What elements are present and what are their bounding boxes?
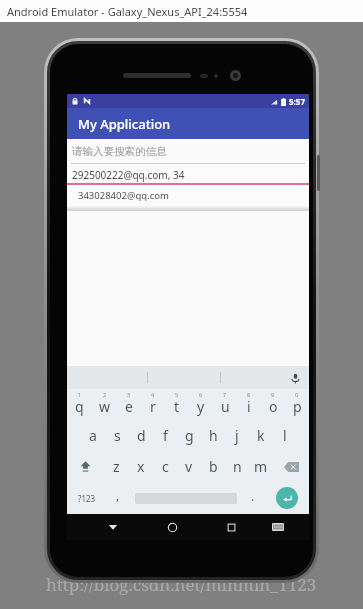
button[interactable]: Home [154, 514, 191, 540]
staticText: t [174, 397, 180, 416]
staticText: f [163, 426, 168, 445]
staticText: i [247, 397, 251, 416]
staticText: k [257, 426, 265, 445]
button[interactable]: 7 [213, 389, 237, 420]
staticText: 2 [103, 391, 107, 398]
staticText: My Application [78, 115, 171, 133]
staticText: w [99, 397, 111, 416]
button[interactable]: k [249, 420, 273, 451]
button[interactable]: h [201, 420, 225, 451]
staticText: u [221, 397, 230, 416]
button[interactable]: l [273, 420, 297, 451]
staticText: h [209, 426, 218, 445]
button[interactable]: Voice input [288, 371, 302, 385]
button[interactable]: x [129, 451, 153, 482]
button[interactable]: Space [130, 482, 241, 514]
button[interactable]: Recents [213, 514, 250, 540]
staticText: o [269, 397, 278, 416]
staticText: n [233, 457, 242, 476]
staticText: 7 [223, 391, 227, 398]
staticText: z [113, 457, 120, 476]
button[interactable]: a [80, 420, 105, 451]
button[interactable]: b [201, 451, 225, 482]
button[interactable]: f [153, 420, 177, 451]
button[interactable]: 292500222@qq.com, 34 [67, 164, 309, 185]
staticText: 5 [175, 391, 179, 398]
staticText: v [185, 457, 193, 476]
staticText: 5:57 [289, 96, 305, 107]
button[interactable]: 0 [285, 389, 309, 420]
staticText: 9 [271, 391, 275, 398]
staticText: 请输入要搜索的信息 [72, 145, 167, 158]
staticText: Android Emulator - Galaxy_Nexus_API_24:5… [7, 4, 248, 19]
button[interactable]: Backspace [273, 451, 309, 482]
staticText: p [293, 397, 302, 416]
staticText: 1 [78, 391, 82, 398]
staticText: a [89, 426, 97, 445]
staticText: b [209, 457, 218, 476]
button[interactable]: ?123 [67, 482, 106, 514]
button[interactable]: Back [94, 514, 132, 540]
button[interactable]: z [104, 451, 129, 482]
staticText: d [137, 426, 146, 445]
button[interactable]: n [225, 451, 249, 482]
button[interactable]: m [249, 451, 273, 482]
staticText: q [75, 397, 84, 416]
staticText: l [283, 426, 287, 445]
button[interactable]: 9 [261, 389, 285, 420]
staticText: x [137, 457, 145, 476]
button[interactable]: Shift [67, 451, 104, 482]
button[interactable]: 3 [117, 389, 141, 420]
button[interactable]: Enter [265, 482, 309, 514]
button[interactable]: c [153, 451, 177, 482]
button[interactable]: j [225, 420, 249, 451]
button[interactable]: g [177, 420, 201, 451]
button[interactable]: 2 [92, 389, 117, 420]
staticText: m [254, 457, 268, 476]
staticText: c [162, 457, 169, 476]
button[interactable]: 请输入要搜索的信息 [67, 139, 309, 164]
button[interactable]: 8 [237, 389, 261, 420]
staticText: , [116, 487, 120, 503]
staticText: 292500222@qq.com, 34 [72, 168, 185, 182]
button[interactable]: 4 [141, 389, 165, 420]
staticText: 343028402@qq.com [78, 189, 169, 202]
staticText: 8 [247, 391, 251, 398]
staticText: g [185, 426, 194, 445]
button[interactable]: 6 [189, 389, 213, 420]
button[interactable]: 343028402@qq.com [67, 185, 309, 206]
button[interactable]: v [177, 451, 201, 482]
staticText: s [114, 426, 121, 445]
staticText: j [235, 426, 239, 445]
staticText: 4 [151, 391, 155, 398]
staticText: 0 [295, 391, 299, 398]
button[interactable]: 1 [67, 389, 92, 420]
button[interactable]: d [129, 420, 153, 451]
staticText: http://blog.csdn.net/minmin_1123 [46, 573, 317, 596]
staticText: 3 [127, 391, 131, 398]
staticText: y [197, 397, 205, 416]
staticText: ?123 [78, 493, 96, 504]
staticText: 6 [199, 391, 203, 398]
staticText: . [251, 488, 255, 504]
button[interactable]: Switch keyboard [259, 514, 296, 540]
button[interactable]: . [241, 482, 265, 514]
staticText: r [150, 397, 156, 416]
staticText: e [125, 397, 133, 416]
button[interactable]: , [106, 482, 130, 514]
button[interactable]: s [105, 420, 129, 451]
button[interactable]: 5 [165, 389, 189, 420]
button[interactable]: My Application [67, 108, 309, 139]
